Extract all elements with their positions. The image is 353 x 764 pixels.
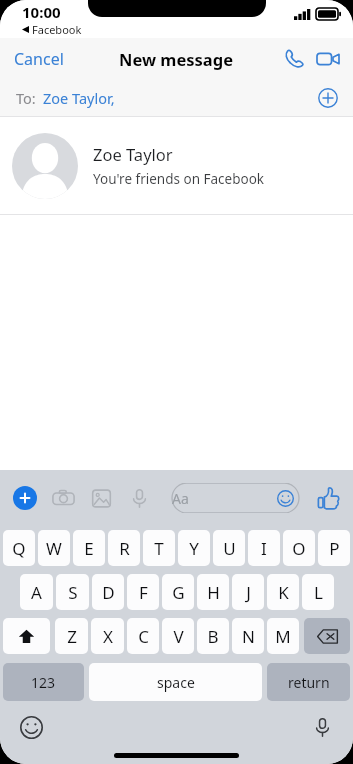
- button[interactable]: A: [20, 574, 53, 610]
- staticText: F: [139, 581, 148, 604]
- button[interactable]: E: [73, 530, 105, 566]
- button[interactable]: V: [162, 618, 194, 654]
- button[interactable]: B: [197, 618, 229, 654]
- button[interactable]: U: [213, 530, 245, 566]
- staticText: Facebook: [32, 22, 82, 37]
- button[interactable]: Zoe Taylor: [0, 117, 353, 214]
- staticText: J: [246, 581, 251, 604]
- staticText: E: [84, 537, 94, 560]
- button[interactable]: C: [127, 618, 159, 654]
- staticText: V: [173, 625, 184, 648]
- staticText: space: [157, 673, 195, 692]
- button[interactable]: M: [267, 618, 299, 654]
- button[interactable]: space: [89, 663, 262, 701]
- staticText: Zoe Taylor: [93, 143, 173, 165]
- staticText: O: [292, 537, 306, 560]
- button[interactable]: N: [232, 618, 264, 654]
- staticText: H: [207, 581, 220, 604]
- button[interactable]: H: [197, 574, 229, 610]
- button[interactable]: Backspace: [304, 618, 350, 654]
- button[interactable]: Photos: [82, 479, 120, 517]
- staticText: U: [223, 537, 236, 560]
- button[interactable]: Emoji keyboard: [14, 710, 48, 744]
- staticText: Q: [12, 537, 26, 560]
- staticText: L: [314, 581, 323, 604]
- staticText: P: [329, 537, 340, 560]
- button[interactable]: J: [232, 574, 264, 610]
- button[interactable]: Aa: [158, 483, 305, 513]
- button[interactable]: D: [92, 574, 124, 610]
- button[interactable]: P: [318, 530, 350, 566]
- staticText: T: [154, 537, 164, 560]
- button[interactable]: W: [38, 530, 70, 566]
- button[interactable]: Voice call: [277, 42, 311, 76]
- staticText: C: [138, 625, 149, 648]
- button[interactable]: Z: [55, 618, 88, 654]
- staticText: K: [278, 581, 289, 604]
- button[interactable]: return: [267, 663, 350, 701]
- button[interactable]: G: [162, 574, 194, 610]
- staticText: Y: [189, 537, 199, 560]
- staticText: Zoe Taylor,: [43, 88, 115, 108]
- button[interactable]: More options: [6, 479, 44, 517]
- staticText: Cancel: [14, 48, 64, 70]
- button[interactable]: S: [56, 574, 89, 610]
- staticText: N: [242, 625, 255, 648]
- button[interactable]: R: [108, 530, 140, 566]
- staticText: A: [31, 581, 42, 604]
- button[interactable]: Add recipient: [313, 83, 343, 113]
- staticText: G: [172, 581, 185, 604]
- staticText: B: [207, 625, 219, 648]
- staticText: I: [261, 537, 267, 560]
- staticText: 10:00: [22, 2, 61, 22]
- button[interactable]: Video call: [311, 42, 345, 76]
- button[interactable]: I: [248, 530, 280, 566]
- button[interactable]: 123: [3, 663, 84, 701]
- button[interactable]: X: [91, 618, 124, 654]
- button[interactable]: Dictation: [305, 710, 339, 744]
- button[interactable]: L: [302, 574, 334, 610]
- button[interactable]: Like: [309, 479, 347, 517]
- staticText: To:: [16, 88, 36, 108]
- button[interactable]: Camera: [44, 479, 82, 517]
- button[interactable]: Q: [3, 530, 35, 566]
- staticText: 123: [31, 673, 56, 692]
- button[interactable]: Voice message: [120, 479, 158, 517]
- button[interactable]: O: [283, 530, 315, 566]
- staticText: Z: [67, 625, 77, 648]
- staticText: You're friends on Facebook: [93, 170, 265, 188]
- staticText: X: [103, 625, 113, 648]
- button[interactable]: F: [127, 574, 159, 610]
- staticText: S: [68, 581, 78, 604]
- button[interactable]: Shift: [3, 618, 50, 654]
- staticText: D: [102, 581, 115, 604]
- staticText: M: [275, 625, 291, 648]
- button[interactable]: Cancel: [0, 38, 78, 80]
- button[interactable]: K: [267, 574, 299, 610]
- button[interactable]: Y: [178, 530, 210, 566]
- staticText: W: [46, 537, 62, 560]
- staticText: New message: [119, 48, 234, 70]
- button[interactable]: T: [143, 530, 175, 566]
- staticText: return: [288, 673, 330, 692]
- staticText: R: [119, 537, 130, 560]
- staticText: Aa: [172, 489, 189, 508]
